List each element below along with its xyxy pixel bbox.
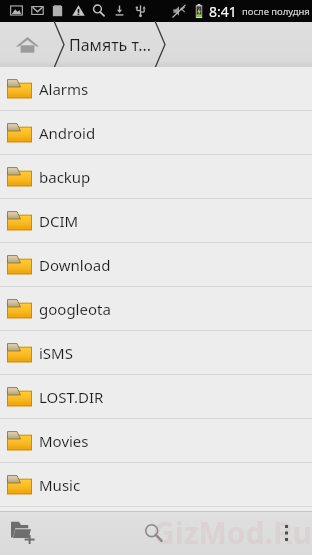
staticText: DCIM bbox=[39, 211, 79, 231]
button[interactable]: LOST.DIR bbox=[0, 375, 312, 418]
staticText: GizMod.Ru bbox=[153, 512, 312, 553]
staticText: LOST.DIR bbox=[39, 387, 104, 407]
staticText: Download bbox=[39, 255, 111, 275]
staticText: Android bbox=[39, 123, 96, 143]
button[interactable]: Alarms bbox=[0, 67, 312, 110]
staticText: iSMS bbox=[39, 343, 73, 363]
button[interactable]: iSMS bbox=[0, 331, 312, 374]
staticText: Alarms bbox=[39, 79, 89, 99]
staticText: после полудня bbox=[242, 5, 310, 18]
button[interactable]: Память т... bbox=[69, 22, 312, 67]
staticText: backup bbox=[39, 167, 91, 187]
button[interactable]: Download bbox=[0, 243, 312, 286]
button[interactable]: Search bbox=[136, 511, 172, 555]
button[interactable]: More options bbox=[269, 511, 303, 555]
button[interactable]: backup bbox=[0, 155, 312, 198]
staticText: Память т... bbox=[69, 34, 152, 56]
staticText: Movies bbox=[39, 431, 89, 451]
button[interactable]: DCIM bbox=[0, 199, 312, 242]
staticText: Music bbox=[39, 475, 81, 495]
button[interactable]: New folder bbox=[0, 511, 50, 555]
staticText: 8:41 bbox=[209, 2, 237, 21]
button[interactable]: googleota bbox=[0, 287, 312, 330]
button[interactable]: Movies bbox=[0, 419, 312, 462]
button[interactable]: Home bbox=[0, 22, 54, 67]
staticText: googleota bbox=[39, 299, 111, 319]
button[interactable]: Android bbox=[0, 111, 312, 154]
button[interactable]: Music bbox=[0, 463, 312, 506]
